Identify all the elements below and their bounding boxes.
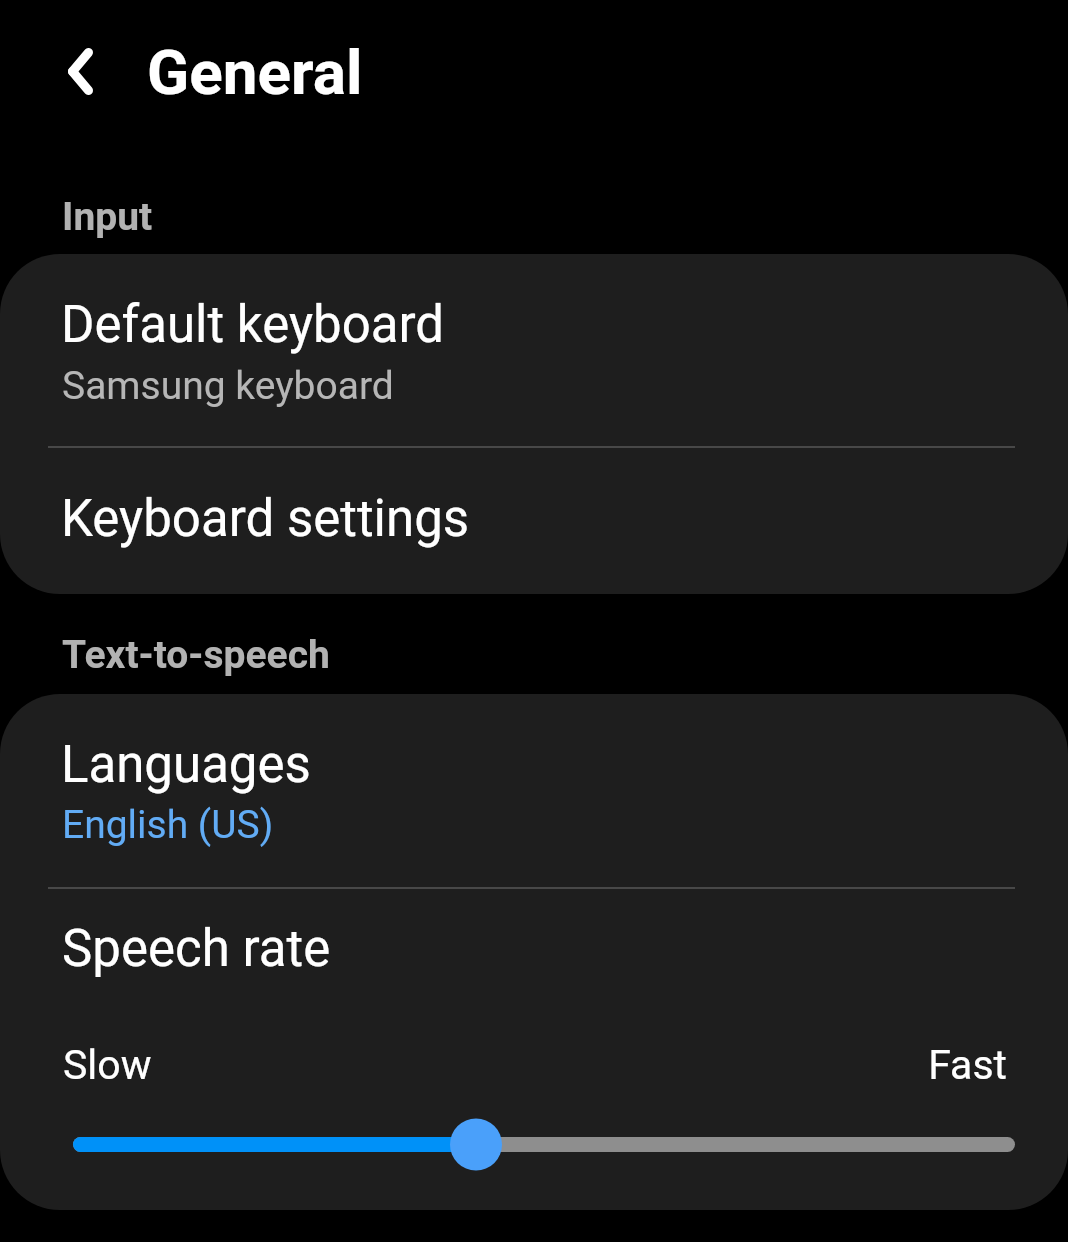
staticText: Samsung keyboard bbox=[62, 363, 394, 409]
button[interactable]: Default keyboard bbox=[0, 254, 1068, 446]
staticText: Slow bbox=[63, 1041, 152, 1089]
staticText: General bbox=[147, 36, 363, 109]
staticText: Text-to-speech bbox=[62, 632, 330, 678]
button[interactable]: Languages bbox=[0, 694, 1068, 887]
staticText: Fast bbox=[928, 1041, 1007, 1089]
button[interactable]: Speech rate slider bbox=[0, 1110, 1068, 1180]
staticText: English (US) bbox=[62, 802, 274, 848]
staticText: Input bbox=[62, 194, 153, 240]
button[interactable]: Navigate up bbox=[38, 29, 123, 114]
staticText: Languages bbox=[61, 735, 311, 795]
staticText: Keyboard settings bbox=[61, 489, 470, 549]
staticText: Default keyboard bbox=[61, 295, 445, 355]
staticText: Speech rate bbox=[62, 919, 331, 979]
button[interactable]: Keyboard settings bbox=[0, 448, 1068, 594]
